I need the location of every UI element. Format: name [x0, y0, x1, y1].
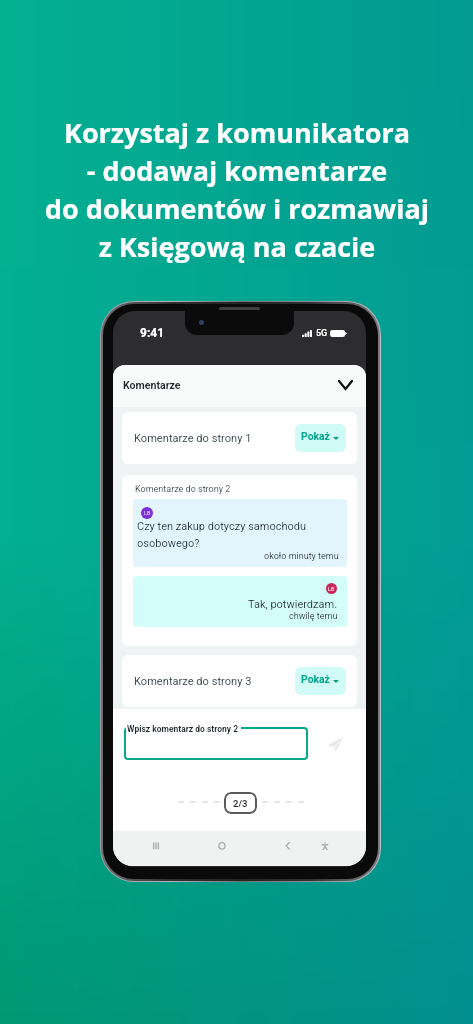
- staticText: Tak, potwierdzam.: [248, 598, 338, 611]
- staticText: chwilę temu: [289, 611, 338, 622]
- button[interactable]: Wstecz: [274, 832, 302, 860]
- staticText: 2/3: [233, 798, 248, 809]
- button[interactable]: Ekran główny: [208, 832, 236, 860]
- button[interactable]: Dostępność: [311, 832, 339, 860]
- staticText: Komentarze do strony 1: [134, 432, 252, 445]
- staticText: 9:41: [140, 326, 165, 340]
- staticText: Korzystaj z komunikatora - dodawaj komen…: [45, 114, 429, 265]
- staticText: około minuty temu: [264, 551, 339, 562]
- staticText: Komentarze do strony 3: [134, 675, 252, 688]
- staticText: Pokaż: [301, 673, 330, 685]
- staticText: Wpisz komentarz do strony 2: [127, 724, 239, 734]
- button[interactable]: Komentarze do strony 3: [122, 655, 357, 707]
- staticText: Czy ten zakup dotyczy samochodu osoboweg…: [137, 520, 307, 550]
- button[interactable]: Pokaż: [295, 667, 346, 695]
- staticText: Komentarze do strony 2: [135, 484, 231, 495]
- staticText: LB: [144, 510, 151, 517]
- staticText: 5G: [316, 328, 328, 339]
- staticText: LB: [328, 586, 335, 592]
- staticText: Pokaż: [301, 430, 330, 442]
- staticText: Komentarze: [123, 379, 181, 391]
- button[interactable]: Komentarze: [113, 365, 366, 407]
- button[interactable]: Komentarze do strony 1: [122, 412, 357, 464]
- button[interactable]: 2/3: [224, 792, 257, 814]
- button[interactable]: Ostatnie aplikacje: [142, 832, 170, 860]
- button[interactable]: Pokaż: [295, 424, 346, 452]
- button[interactable]: [124, 727, 308, 760]
- button[interactable]: Wyślij komentarz: [324, 733, 347, 756]
